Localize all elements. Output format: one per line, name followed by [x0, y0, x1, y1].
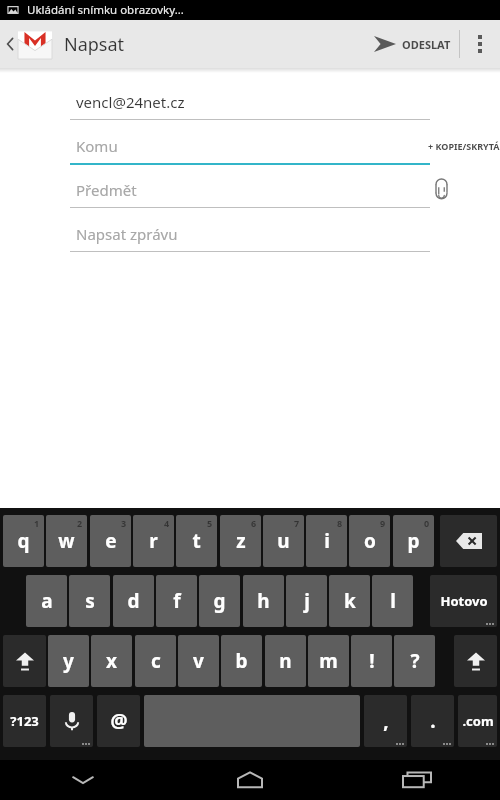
button[interactable]: vencl@24net.cz [0, 80, 500, 124]
other: Back [4, 34, 16, 54]
button[interactable]: Voice input [50, 695, 93, 747]
button[interactable]: i [306, 515, 347, 567]
staticText: g [213, 588, 226, 614]
button[interactable]: .com [458, 695, 497, 747]
button[interactable]: Předmět [0, 168, 500, 212]
staticText: 0 [424, 517, 430, 529]
button[interactable]: Back [0, 20, 125, 68]
staticText: o [364, 528, 376, 554]
button[interactable]: a [26, 575, 67, 627]
staticText: ? [410, 648, 420, 674]
button[interactable]: c [135, 635, 176, 687]
button[interactable]: p [393, 515, 434, 567]
button[interactable]: g [199, 575, 240, 627]
button[interactable]: ! [351, 635, 392, 687]
button[interactable]: l [372, 575, 413, 627]
staticText: n [279, 648, 292, 674]
staticText: u [277, 528, 290, 554]
staticText: i [324, 528, 330, 554]
button[interactable]: More options [460, 20, 500, 68]
button[interactable]: Shift [3, 635, 46, 687]
staticText: ?123 [10, 712, 39, 730]
button[interactable]: Recent apps [333, 760, 500, 800]
button[interactable]: . [411, 695, 454, 747]
button[interactable]: Hotovo [430, 575, 497, 627]
staticText: d [127, 588, 140, 614]
staticText: 7 [294, 517, 300, 529]
button[interactable]: w [46, 515, 87, 567]
button[interactable]: d [113, 575, 154, 627]
button[interactable]: Komu [0, 124, 500, 168]
button[interactable]: @ [97, 695, 140, 747]
staticText: l [390, 588, 396, 614]
staticText: 6 [251, 517, 257, 529]
staticText: b [235, 648, 248, 674]
button[interactable]: x [91, 635, 132, 687]
staticText: vencl@24net.cz [76, 92, 185, 112]
staticText: k [344, 588, 356, 614]
staticText: x [106, 648, 117, 674]
button[interactable]: Shift [454, 635, 497, 687]
staticText: j [304, 588, 310, 614]
button[interactable]: y [48, 635, 89, 687]
button[interactable]: q [3, 515, 44, 567]
staticText: z [236, 528, 246, 554]
button[interactable]: s [69, 575, 110, 627]
button[interactable]: Attach file [424, 173, 458, 207]
staticText: r [149, 528, 158, 554]
staticText: 8 [337, 517, 343, 529]
button[interactable]: e [90, 515, 131, 567]
staticText: a [41, 588, 53, 614]
staticText: 9 [380, 517, 386, 529]
button[interactable]: n [265, 635, 306, 687]
button[interactable]: v [178, 635, 219, 687]
button[interactable]: Delete [440, 515, 497, 567]
staticText: t [192, 528, 201, 554]
button[interactable]: f [156, 575, 197, 627]
button[interactable]: b [221, 635, 262, 687]
staticText: 2 [77, 517, 83, 529]
staticText: Hotovo [440, 592, 488, 610]
staticText: e [105, 528, 117, 554]
button[interactable]: z [220, 515, 261, 567]
staticText: 3 [121, 517, 127, 529]
staticText: Napsat zprávu [76, 224, 178, 244]
staticText: .com [462, 712, 494, 730]
staticText: Ukládání snímku obrazovky... [27, 2, 184, 18]
staticText: f [173, 588, 181, 614]
staticText: + KOPIE/SKRYTÁ [428, 140, 500, 152]
staticText: p [407, 528, 420, 554]
button[interactable]: ODESLAT [366, 20, 459, 68]
button[interactable]: u [263, 515, 304, 567]
staticText: 5 [207, 517, 213, 529]
staticText: c [151, 648, 161, 674]
button[interactable]: r [133, 515, 174, 567]
staticText: s [85, 588, 95, 614]
button[interactable]: t [176, 515, 217, 567]
staticText: q [17, 528, 30, 554]
button[interactable]: ?123 [3, 695, 46, 747]
button[interactable]: + KOPIE/SKRYTÁ [428, 140, 500, 152]
button[interactable]: o [349, 515, 390, 567]
button[interactable]: Home [166, 760, 333, 800]
button[interactable]: j [286, 575, 327, 627]
staticText: w [58, 528, 75, 554]
button[interactable]: k [329, 575, 370, 627]
staticText: Napsat [64, 32, 125, 57]
staticText: Komu [76, 136, 118, 156]
button[interactable]: m [308, 635, 349, 687]
staticText: . [430, 708, 436, 734]
button[interactable]: ? [394, 635, 435, 687]
button[interactable]: Napsat zprávu [0, 212, 500, 256]
button[interactable]: , [364, 695, 407, 747]
staticText: @ [110, 708, 128, 734]
button[interactable]: h [243, 575, 284, 627]
button[interactable]: Hide keyboard [0, 760, 166, 800]
staticText: ODESLAT [402, 37, 451, 52]
staticText: ! [369, 648, 375, 674]
staticText: 4 [164, 517, 170, 529]
staticText: h [257, 588, 270, 614]
staticText: y [63, 648, 74, 674]
staticText: 1 [34, 517, 40, 529]
